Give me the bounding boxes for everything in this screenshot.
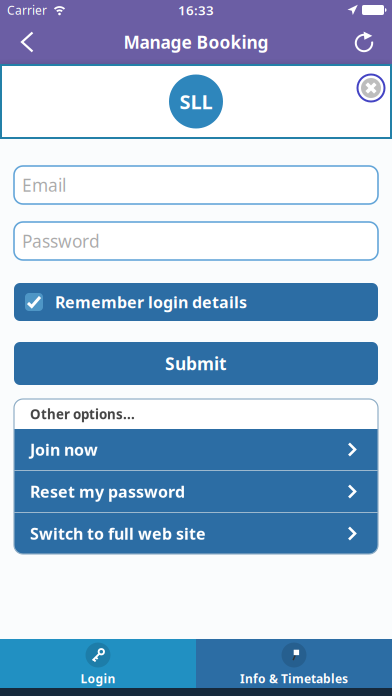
button[interactable]: Switch to full web site <box>14 513 378 554</box>
button[interactable]: Submit <box>14 342 378 385</box>
staticText: Info & Timetables <box>240 670 348 686</box>
button[interactable]: Back <box>0 20 34 64</box>
staticText: Email <box>22 173 66 196</box>
button[interactable]: Email <box>14 166 378 204</box>
staticText: Switch to full web site <box>30 523 206 544</box>
button[interactable]: Join now <box>14 429 378 470</box>
staticText: SLL <box>179 88 212 115</box>
staticText: Login <box>80 670 115 686</box>
button[interactable]: Remember login details <box>14 283 378 321</box>
button[interactable]: Password <box>14 222 378 260</box>
button[interactable]: Login <box>0 639 196 688</box>
staticText: Join now <box>30 439 98 460</box>
staticText: Remember login details <box>55 291 247 313</box>
staticText: Manage Booking <box>123 30 268 53</box>
staticText: Other options... <box>30 405 135 423</box>
staticText: Password <box>22 229 100 252</box>
staticText: 16:33 <box>178 1 214 19</box>
button[interactable]: Close <box>357 74 385 102</box>
staticText: Carrier <box>7 2 47 18</box>
button[interactable]: Refresh <box>352 20 392 64</box>
button[interactable]: Info & Timetables <box>196 639 392 688</box>
button[interactable]: Reset my password <box>14 471 378 512</box>
staticText: Submit <box>165 352 227 375</box>
staticText: Reset my password <box>30 481 185 502</box>
